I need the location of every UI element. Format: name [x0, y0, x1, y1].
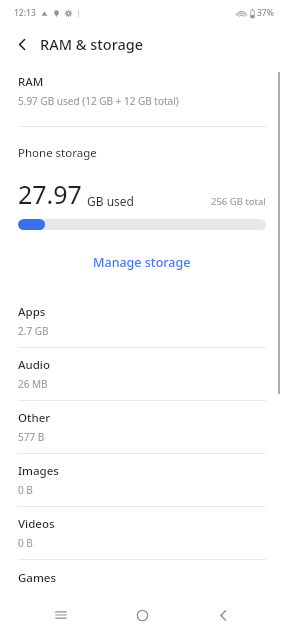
staticText: GB used — [87, 193, 134, 209]
staticText: Manage storage — [93, 254, 191, 271]
staticText: 0 B — [18, 483, 33, 497]
button[interactable]: Home — [122, 600, 162, 630]
button[interactable]: Apps — [0, 295, 284, 347]
staticText: 26 MB — [18, 377, 48, 391]
staticText: Other — [18, 410, 51, 426]
staticText: RAM — [18, 74, 44, 90]
button[interactable]: Videos — [0, 507, 284, 559]
staticText: Audio — [18, 357, 51, 373]
button[interactable]: Images — [0, 454, 284, 506]
staticText: RAM & storage — [40, 34, 144, 54]
staticText: 27.97 — [18, 177, 82, 211]
staticText: Phone storage — [18, 145, 97, 161]
button[interactable]: Back — [203, 600, 243, 630]
staticText: 12:13 — [14, 7, 36, 19]
staticText: 577 B — [18, 430, 45, 444]
button[interactable]: Audio — [0, 348, 284, 400]
staticText: Images — [18, 463, 59, 479]
staticText: 5.97 GB used (12 GB + 12 GB total) — [18, 94, 179, 108]
staticText: 2.7 GB — [18, 324, 49, 338]
button[interactable]: RAM — [0, 74, 284, 108]
button[interactable]: Manage storage — [0, 248, 284, 277]
staticText: 256 GB total — [211, 195, 266, 208]
staticText: Apps — [18, 304, 46, 320]
button[interactable]: Back — [8, 30, 36, 58]
staticText: 0 B — [18, 536, 33, 550]
button[interactable]: Games — [0, 560, 284, 586]
staticText: 37% — [257, 7, 274, 19]
staticText: Videos — [18, 516, 55, 532]
button[interactable]: Recent apps — [41, 600, 81, 630]
button[interactable]: Other — [0, 401, 284, 453]
staticText: Games — [18, 570, 57, 586]
